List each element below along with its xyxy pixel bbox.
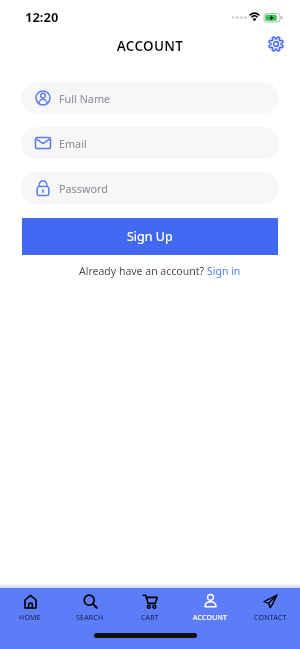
staticText: SEARCH	[76, 613, 104, 623]
staticText: CART	[141, 613, 159, 623]
button[interactable]: HOME	[0, 593, 60, 638]
button[interactable]: Password	[21, 172, 279, 204]
button[interactable]	[265, 33, 287, 55]
button[interactable]: CART	[120, 593, 180, 638]
button[interactable]: SEARCH	[60, 593, 120, 638]
button[interactable]: Sign Up	[22, 218, 278, 255]
staticText: 12:20	[25, 8, 59, 26]
staticText: Sign Up	[127, 228, 173, 245]
staticText: Email	[59, 136, 87, 151]
button[interactable]: ACCOUNT	[180, 593, 240, 638]
staticText: Full Name	[59, 91, 111, 106]
staticText: HOME	[19, 613, 41, 623]
staticText: CONTACT	[254, 613, 287, 623]
button[interactable]: Sign in	[207, 264, 241, 278]
staticText: ACCOUNT	[0, 37, 300, 55]
button[interactable]: CONTACT	[240, 593, 300, 638]
staticText: ACCOUNT	[193, 613, 228, 623]
staticText: Already have an account?	[79, 264, 207, 278]
staticText: Password	[59, 181, 108, 196]
button[interactable]: Email	[21, 127, 279, 159]
button[interactable]: Full Name	[21, 82, 279, 114]
